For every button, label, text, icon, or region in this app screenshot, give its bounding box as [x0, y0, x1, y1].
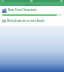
button[interactable]: File icon — [0, 18, 64, 23]
staticText: New Time Classroom — [8, 8, 37, 12]
other: File icon — [2, 19, 6, 23]
button[interactable]: App icon — [0, 7, 64, 13]
staticText: Search results — [24, 3, 41, 6]
staticText: Work Antarctic Lecture Bands — [7, 19, 45, 23]
other: App icon — [2, 8, 7, 13]
button[interactable]: Search results — [0, 2, 64, 6]
